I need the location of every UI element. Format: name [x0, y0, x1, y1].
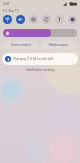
staticText: Notification settings [26, 68, 55, 72]
staticText: Charging (1 h 54 m until full) [13, 57, 54, 61]
button[interactable]: Brightness [3, 29, 77, 37]
button[interactable]: Bluetooth [29, 15, 38, 24]
button[interactable]: Flashlight [55, 15, 64, 24]
button[interactable]: Wi-Fi [3, 15, 12, 24]
button[interactable]: Device control [3, 41, 38, 49]
button[interactable]: Sound [16, 15, 25, 24]
staticText: Device control [11, 43, 31, 47]
button[interactable]: Notification settings [0, 67, 80, 72]
staticText: 9:41 [3, 2, 10, 6]
button[interactable]: Do not disturb [68, 15, 77, 24]
button[interactable]: Media output [41, 41, 77, 49]
button[interactable]: Charging (1 h 54 m until full) [2, 53, 78, 65]
button[interactable]: Auto rotate [42, 15, 51, 24]
staticText: Fri, Sep 15 [3, 9, 19, 13]
staticText: Media output [49, 43, 69, 47]
